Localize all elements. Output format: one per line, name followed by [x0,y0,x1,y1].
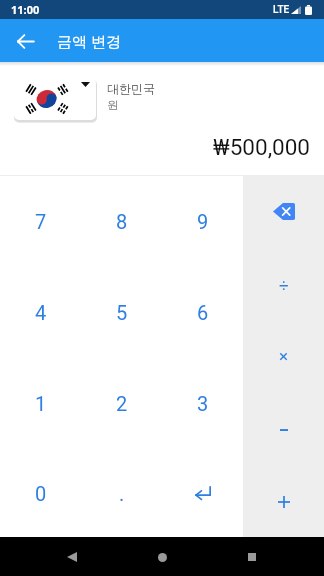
button[interactable]: Multiply [243,320,324,392]
staticText: 금액 변경 [57,31,121,51]
staticText: 9 [197,210,209,233]
button[interactable]: 4 [0,267,81,358]
staticText: 1 [35,392,47,415]
button[interactable]: Backspace [243,176,324,248]
button[interactable]: . [81,449,162,537]
button[interactable]: 9 [162,176,243,267]
button[interactable]: Back [54,539,90,575]
staticText: 5 [116,301,128,324]
button[interactable]: 0 [0,449,81,537]
staticText: ÷ [279,275,289,295]
button[interactable]: 1 [0,358,81,449]
staticText: . [119,482,125,505]
staticText: 6 [197,301,209,324]
staticText: 4 [35,301,47,324]
button[interactable]: Enter [162,449,243,537]
staticText: LTE [273,4,290,16]
button[interactable]: 3 [162,358,243,449]
staticText: 2 [116,392,128,415]
button[interactable]: 8 [81,176,162,267]
staticText: 8 [116,210,128,233]
staticText: 11:00 [11,2,40,17]
staticText: 대한민국 [107,81,155,96]
button[interactable]: Minus [243,392,324,464]
button[interactable]: 5 [81,267,162,358]
staticText: 0 [35,482,47,505]
staticText: 원 [107,98,119,112]
button[interactable] [14,78,96,120]
staticText: ₩500,000 [213,134,310,160]
button[interactable]: 2 [81,358,162,449]
button[interactable]: Recents [234,539,270,575]
staticText: 7 [35,210,47,233]
staticText: 3 [197,392,209,415]
button[interactable]: Plus [243,464,324,536]
button[interactable]: Home [144,539,180,575]
button[interactable]: Divide [243,248,324,320]
button[interactable]: 7 [0,176,81,267]
staticText: × [279,346,289,366]
button[interactable]: Back [6,22,44,60]
button[interactable]: 6 [162,267,243,358]
